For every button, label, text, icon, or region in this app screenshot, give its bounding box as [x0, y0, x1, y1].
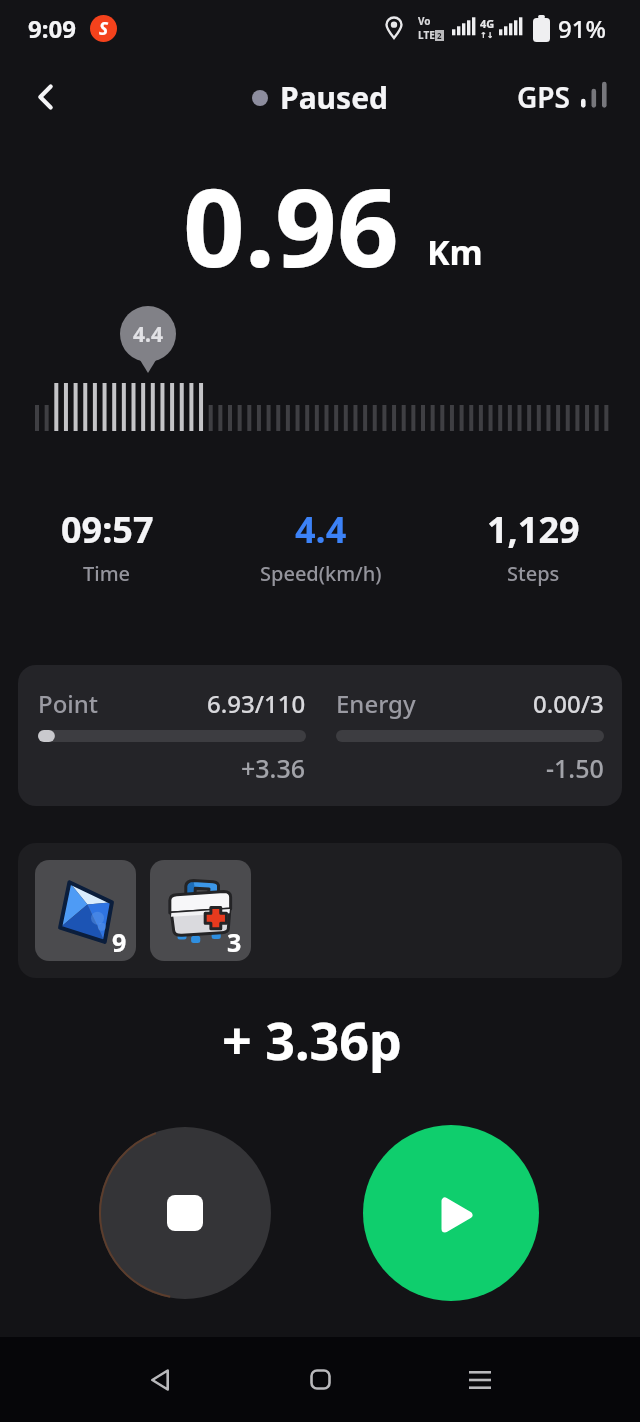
- staticText: 1,129: [487, 505, 580, 554]
- button[interactable]: GPS: [517, 78, 610, 116]
- staticText: +3.36: [241, 751, 306, 785]
- staticText: Paused: [280, 77, 389, 118]
- staticText: GPS: [517, 78, 570, 116]
- staticText: Vo: [418, 14, 431, 28]
- button[interactable]: [24, 75, 68, 119]
- staticText: Energy: [336, 687, 416, 720]
- staticText: Km: [427, 229, 483, 275]
- staticText: 0.96: [183, 152, 399, 299]
- staticText: 3: [227, 925, 242, 959]
- staticText: Steps: [507, 560, 560, 587]
- staticText: 91%: [558, 12, 606, 45]
- staticText: 6.93/110: [207, 687, 306, 720]
- staticText: 0.00/3: [533, 687, 604, 720]
- staticText: 4G: [480, 16, 495, 31]
- button[interactable]: [97, 1125, 273, 1301]
- staticText: -1.50: [546, 751, 604, 785]
- button[interactable]: [400, 1337, 560, 1422]
- staticText: LTE: [418, 28, 435, 42]
- button[interactable]: 3: [150, 860, 251, 961]
- staticText: + 3.36p: [222, 1004, 402, 1075]
- staticText: 2: [437, 30, 442, 41]
- staticText: 09:57: [61, 505, 154, 554]
- button[interactable]: [240, 1337, 400, 1422]
- staticText: 4.4: [295, 505, 347, 554]
- button[interactable]: [363, 1125, 539, 1301]
- staticText: Point: [38, 687, 99, 720]
- button[interactable]: [80, 1337, 240, 1422]
- staticText: S: [99, 17, 109, 40]
- staticText: Speed(km/h): [260, 560, 382, 587]
- staticText: 9:09: [28, 12, 76, 45]
- staticText: ↑↓: [480, 31, 494, 40]
- staticText: Time: [83, 560, 131, 587]
- staticText: 4.4: [133, 320, 163, 349]
- button[interactable]: 9: [35, 860, 136, 961]
- staticText: 9: [112, 925, 127, 959]
